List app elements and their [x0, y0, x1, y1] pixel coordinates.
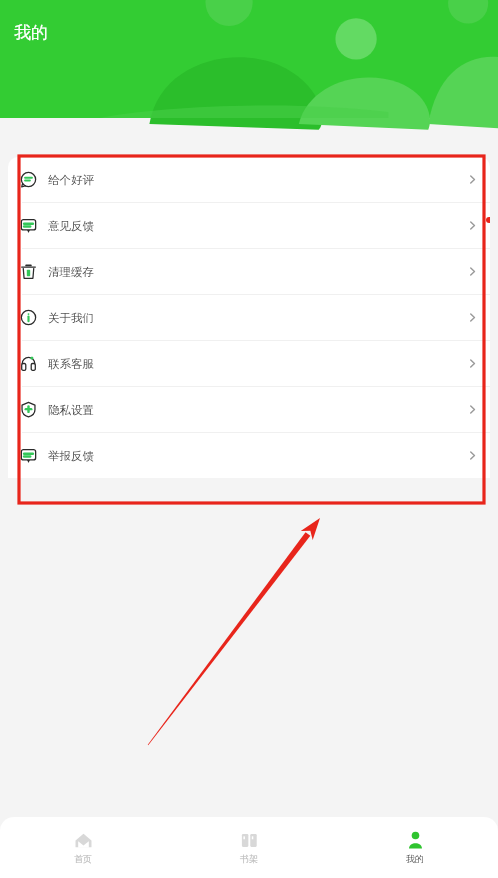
staticText: 我的 — [14, 22, 48, 43]
button[interactable]: 隐私设置 — [8, 387, 490, 432]
staticText: 首页 — [74, 853, 92, 864]
staticText: 举报反馈 — [48, 449, 94, 463]
staticText: 隐私设置 — [48, 403, 94, 417]
button[interactable]: 书架 — [166, 817, 332, 878]
button[interactable]: 关于我们 — [8, 295, 490, 340]
button[interactable]: 联系客服 — [8, 341, 490, 386]
staticText: 意见反馈 — [48, 219, 94, 233]
button[interactable]: 首页 — [0, 817, 166, 878]
staticText: 书架 — [240, 853, 258, 864]
staticText: 关于我们 — [48, 311, 94, 325]
button[interactable]: 给个好评 — [8, 157, 490, 202]
staticText: 我的 — [406, 853, 424, 864]
staticText: 联系客服 — [48, 357, 94, 371]
button[interactable]: 举报反馈 — [8, 433, 490, 478]
staticText: 给个好评 — [48, 173, 94, 187]
staticText: 清理缓存 — [48, 265, 94, 279]
button[interactable]: 清理缓存 — [8, 249, 490, 294]
button[interactable]: 意见反馈 — [8, 203, 490, 248]
button[interactable]: 我的 — [332, 817, 498, 878]
